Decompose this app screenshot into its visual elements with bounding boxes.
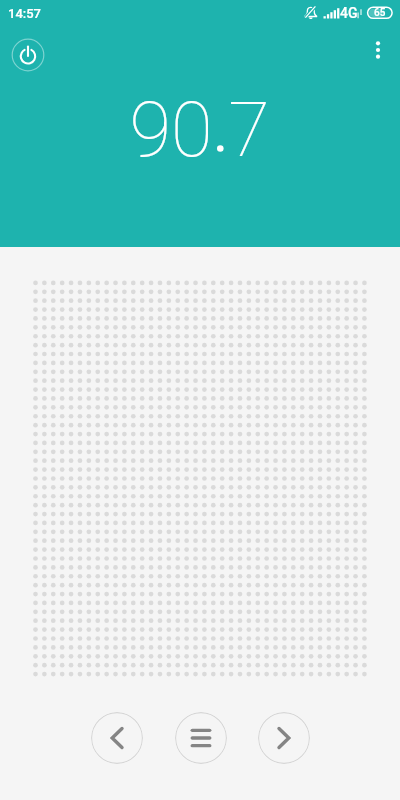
button[interactable]: Power (10, 37, 46, 73)
staticText: 14:57 (8, 6, 41, 21)
button[interactable]: Next station (258, 712, 310, 764)
staticText: 65 (374, 7, 386, 19)
button[interactable]: Previous station (91, 712, 143, 764)
button[interactable]: More options (360, 32, 396, 68)
staticText: 4G (340, 5, 358, 21)
staticText: 90 (129, 85, 213, 174)
button[interactable]: Station list (175, 712, 227, 764)
staticText: 7 (228, 85, 270, 174)
